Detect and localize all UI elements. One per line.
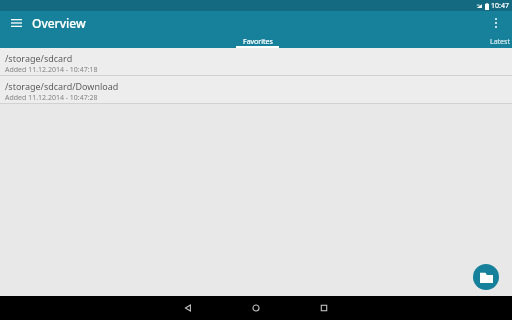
staticText: 10:47 (491, 1, 509, 11)
button[interactable]: Favorites (236, 35, 279, 48)
staticText: Overview (32, 15, 86, 31)
button[interactable]: /storage/sdcard (0, 48, 512, 75)
button[interactable]: New folder (473, 264, 499, 290)
button[interactable]: Home (233, 296, 279, 320)
staticText: Favorites (243, 37, 273, 47)
staticText: /storage/sdcard/Download (5, 80, 119, 92)
button[interactable]: More options (487, 14, 505, 32)
staticText: Added 11.12.2014 - 10:47:18 (5, 65, 98, 75)
staticText: Added 11.12.2014 - 10:47:28 (5, 93, 98, 103)
staticText: Latest (490, 37, 510, 47)
button[interactable]: Recent apps (301, 296, 347, 320)
button[interactable]: /storage/sdcard/Download (0, 76, 512, 103)
button[interactable]: Back (165, 296, 211, 320)
button[interactable]: Latest (478, 35, 512, 48)
staticText: /storage/sdcard (5, 52, 73, 64)
button[interactable]: Open navigation drawer (7, 14, 25, 32)
